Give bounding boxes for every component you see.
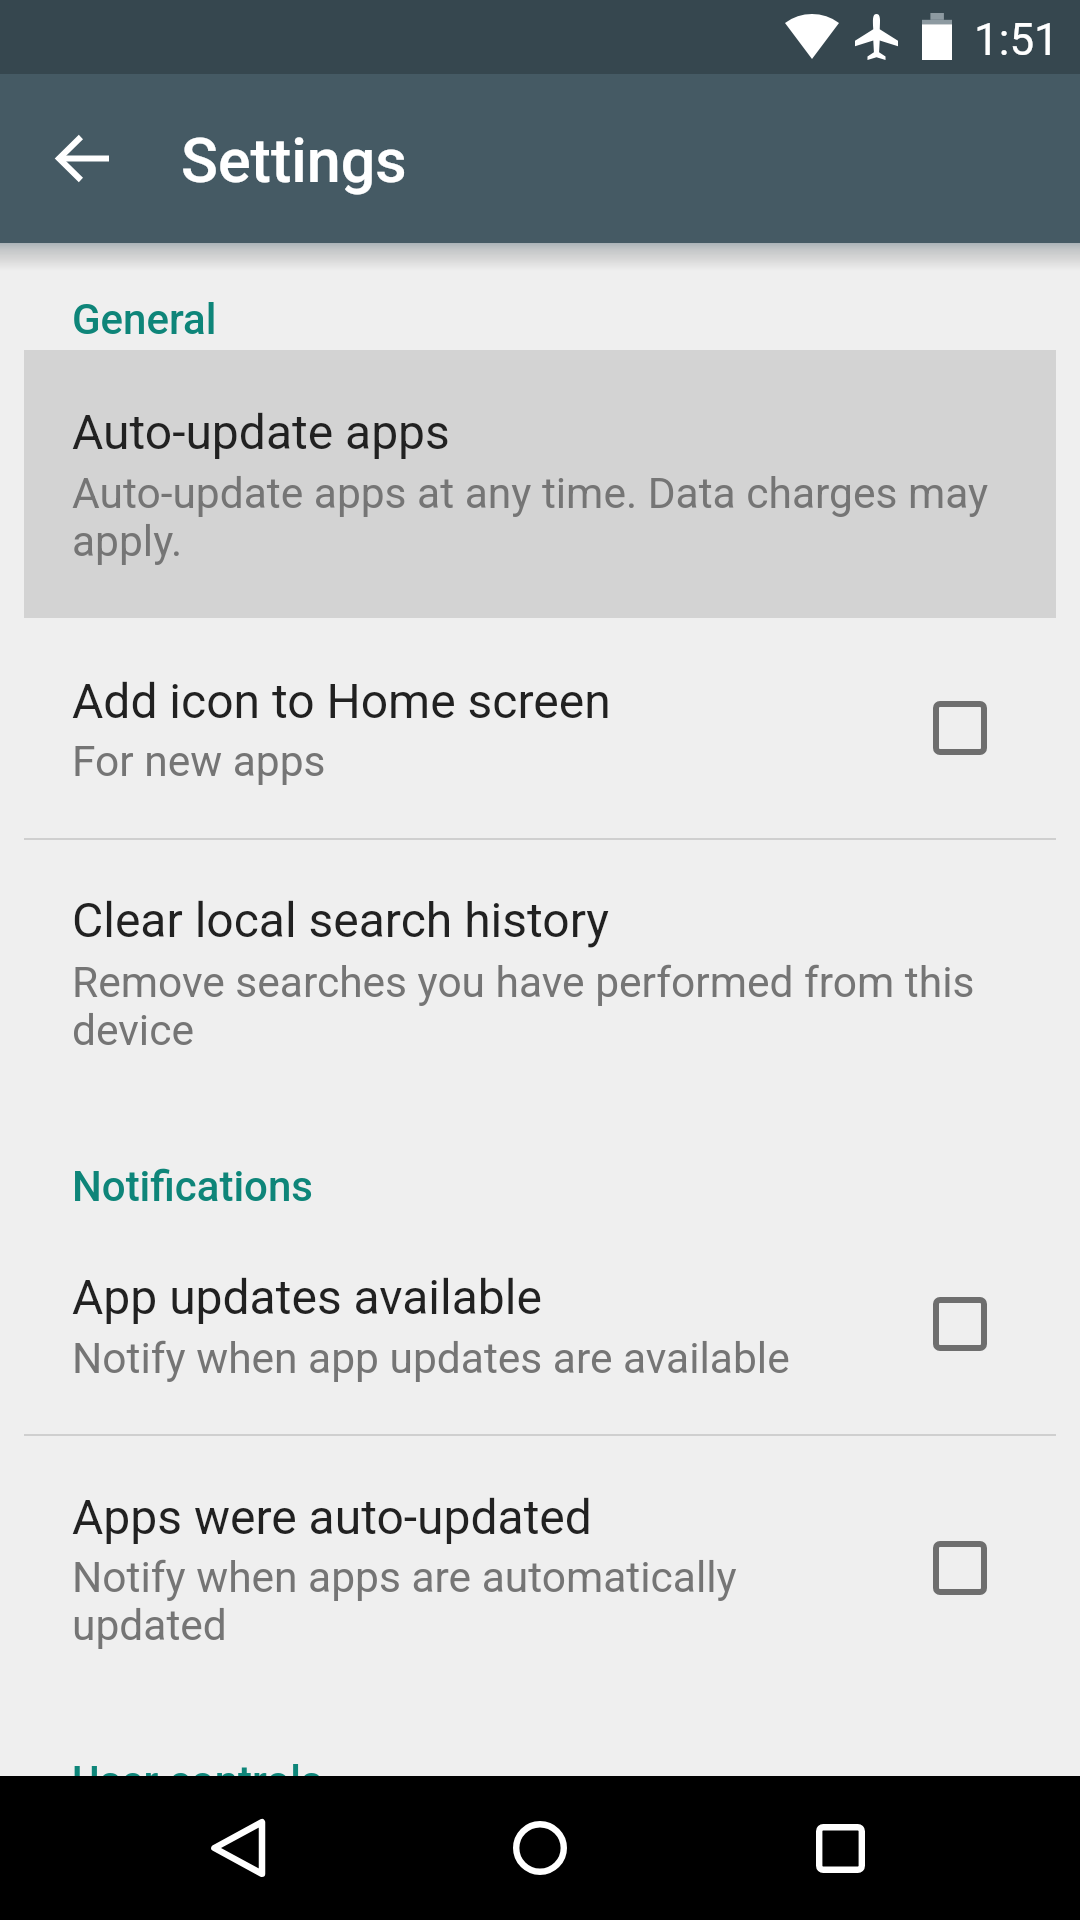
button[interactable] bbox=[24, 350, 1056, 618]
button[interactable]: Home bbox=[468, 1776, 612, 1920]
staticText: Auto-update apps bbox=[72, 404, 450, 460]
staticText: App updates available bbox=[72, 1269, 542, 1325]
button[interactable] bbox=[0, 640, 1080, 838]
button[interactable]: Back bbox=[167, 1776, 311, 1920]
button[interactable] bbox=[0, 1436, 1080, 1666]
button[interactable] bbox=[0, 1238, 1080, 1434]
button[interactable]: Toggle bbox=[908, 1272, 1012, 1376]
staticText: Settings bbox=[181, 125, 407, 196]
button[interactable]: Toggle bbox=[908, 1516, 1012, 1620]
staticText: User controls bbox=[72, 1757, 323, 1806]
staticText: Remove searches you have performed from … bbox=[72, 958, 982, 1055]
staticText: Notify when app updates are available bbox=[72, 1334, 790, 1384]
staticText: Apps were auto-updated bbox=[72, 1489, 592, 1545]
staticText: Auto-update apps at any time. Data charg… bbox=[72, 469, 1002, 566]
staticText: Add icon to Home screen bbox=[72, 673, 611, 729]
button[interactable]: Navigate up bbox=[26, 102, 138, 214]
staticText: Notifications bbox=[72, 1162, 313, 1211]
staticText: Clear local search history bbox=[72, 892, 610, 948]
staticText: General bbox=[72, 295, 217, 344]
button[interactable] bbox=[0, 840, 1080, 1070]
staticText: Notify when apps are automatically updat… bbox=[72, 1553, 772, 1650]
button[interactable]: Recent apps bbox=[768, 1776, 912, 1920]
button[interactable]: Toggle bbox=[908, 676, 1012, 780]
staticText: 1:51 bbox=[974, 14, 1059, 66]
staticText: For new apps bbox=[72, 737, 326, 787]
